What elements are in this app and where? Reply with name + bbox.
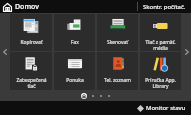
- button[interactable]: Skenovať: [97, 14, 138, 51]
- staticText: Skenovať: [107, 39, 128, 46]
- button[interactable]: Previous page: [0, 14, 9, 90]
- staticText: Zabezpečená tlač: [16, 77, 47, 89]
- staticText: Fax: [71, 39, 79, 46]
- staticText: Skontr. počítač.: [143, 3, 186, 11]
- button[interactable]: Ponuka: [54, 52, 95, 90]
- button[interactable]: Domov: [0, 2, 43, 12]
- staticText: Príručka App. Library: [145, 77, 176, 89]
- button[interactable]: Kopírovať: [10, 14, 52, 51]
- staticText: Tlač z pamäť. média: [145, 39, 176, 51]
- button[interactable]: Skontr. počítač.: [138, 3, 191, 11]
- staticText: Monitor stavu: [146, 104, 186, 112]
- staticText: Ponuka: [66, 77, 84, 84]
- button[interactable]: Monitor stavu: [132, 104, 191, 112]
- staticText: Domov: [15, 2, 39, 12]
- button[interactable]: Tlač z pamäť. média: [140, 14, 181, 51]
- button[interactable]: Príručka App. Library: [140, 52, 181, 90]
- button[interactable]: Zabezpečená tlač: [10, 52, 52, 90]
- staticText: Tel. zoznam: [104, 77, 131, 84]
- button[interactable]: Tel. zoznam: [97, 52, 138, 90]
- button[interactable]: Fax: [54, 14, 95, 51]
- staticText: Kopírovať: [20, 39, 43, 46]
- button[interactable]: Home page: [81, 93, 87, 99]
- button[interactable]: Next page: [182, 14, 191, 90]
